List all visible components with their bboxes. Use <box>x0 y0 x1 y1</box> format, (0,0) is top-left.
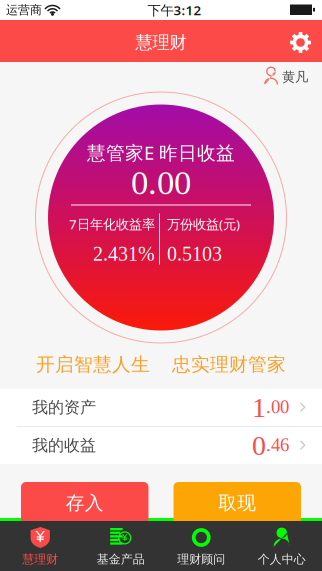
staticText: 慧理财 <box>22 552 58 567</box>
staticText: 我的收益 <box>32 436 96 455</box>
staticText: 1 <box>252 392 266 423</box>
staticText: 0 <box>252 430 266 461</box>
button[interactable]: 个人中心 <box>241 521 322 571</box>
button[interactable]: 存入 <box>21 482 148 524</box>
staticText: 忠实理财管家 <box>172 353 286 376</box>
staticText: 7日年化收益率 <box>69 215 155 233</box>
button[interactable]: 我的收益 <box>0 427 322 464</box>
staticText: 万份收益(元) <box>167 215 240 233</box>
staticText: 存入 <box>66 491 104 514</box>
staticText: 基金产品 <box>97 552 145 567</box>
button[interactable]: 理财顾问 <box>161 521 241 571</box>
staticText: 个人中心 <box>258 552 306 567</box>
staticText: 黄凡 <box>282 69 308 85</box>
button[interactable]: 基金产品 <box>80 521 161 571</box>
button[interactable]: 慧理财 <box>0 521 80 571</box>
staticText: .46 <box>266 435 289 455</box>
staticText: 开启智慧人生 <box>36 353 150 376</box>
staticText: 0.5103 <box>167 243 222 265</box>
staticText: 下午3:12 <box>147 1 201 19</box>
staticText: 取现 <box>218 491 256 514</box>
staticText: 慧理财 <box>135 32 186 53</box>
staticText: 运营商 <box>6 3 42 17</box>
staticText: .00 <box>266 397 289 417</box>
button[interactable]: 我的资产 <box>0 389 322 427</box>
button[interactable]: 黄凡 <box>263 66 322 88</box>
staticText: 慧管家E 昨日收益 <box>87 140 235 165</box>
button[interactable]: 设置 <box>279 20 322 65</box>
button[interactable]: 取现 <box>173 482 301 524</box>
staticText: 2.431% <box>93 243 155 265</box>
staticText: 0.00 <box>131 163 191 202</box>
staticText: 理财顾问 <box>177 552 225 567</box>
staticText: 我的资产 <box>32 398 96 417</box>
